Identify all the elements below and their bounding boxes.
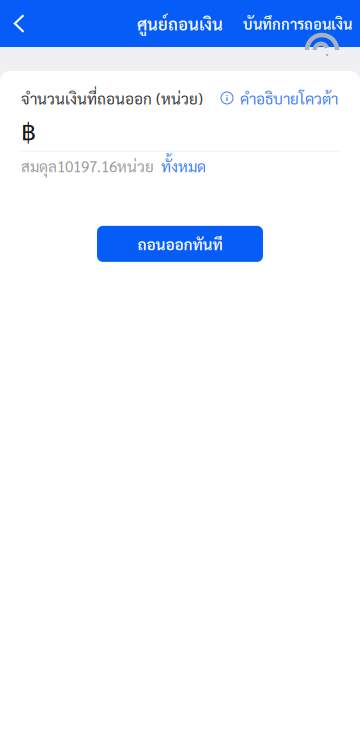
staticText: สมดุล10197.16หน่วย xyxy=(21,156,154,176)
button[interactable]: คำอธิบายโควต้า xyxy=(233,88,338,108)
button[interactable]: บันทึกการถอนเงิน xyxy=(243,0,360,47)
staticText: บันทึกการถอนเงิน xyxy=(243,14,352,33)
button[interactable]: ถอนออกทันที xyxy=(97,226,263,262)
staticText: คำอธิบายโควต้า xyxy=(240,88,338,108)
staticText: ศูนย์ถอนเงิน xyxy=(137,13,223,34)
staticText: ถอนออกทันที xyxy=(137,234,222,254)
staticText: ฿ xyxy=(21,118,36,146)
button[interactable]: ทั้งหมด xyxy=(154,156,206,176)
button[interactable]: Back xyxy=(0,0,38,47)
staticText: จำนวนเงินที่ถอนออก (หน่วย) xyxy=(21,88,203,108)
staticText: ทั้งหมด xyxy=(161,156,206,176)
